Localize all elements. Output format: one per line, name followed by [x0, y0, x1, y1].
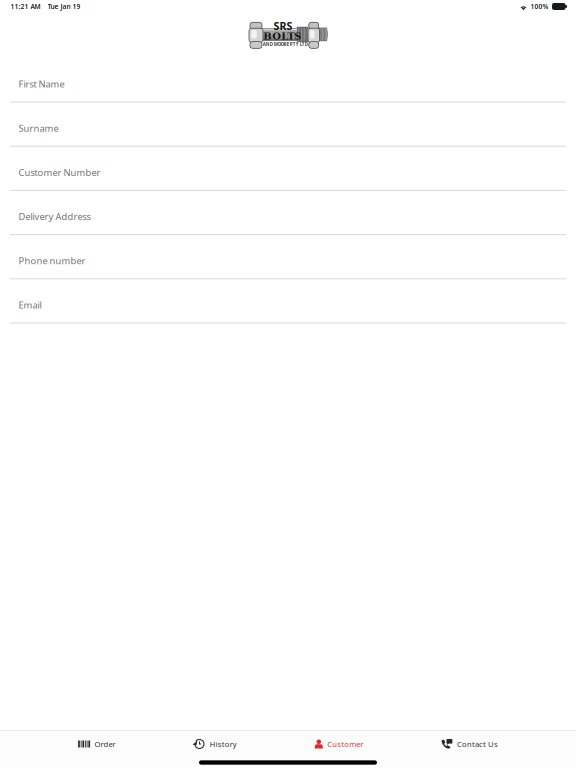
button[interactable]: History	[194, 731, 237, 757]
button[interactable]: Customer Number	[0, 147, 576, 191]
button[interactable]: Order	[78, 731, 116, 757]
staticText: First Name	[18, 77, 64, 90]
button[interactable]: Email	[0, 279, 576, 323]
staticText: History	[210, 739, 237, 749]
staticText: 100%	[530, 2, 548, 11]
staticText: Customer Number	[18, 166, 100, 179]
staticText: Tue Jan 19	[47, 2, 80, 11]
staticText: 11:21 AM	[10, 2, 40, 11]
button[interactable]: Phone number	[0, 235, 576, 279]
staticText: Phone number	[18, 254, 85, 267]
button[interactable]: First Name	[0, 58, 576, 102]
staticText: Delivery Address	[18, 210, 90, 223]
button[interactable]: Contact Us	[441, 731, 498, 757]
staticText: Surname	[18, 122, 58, 134]
staticText: Order	[95, 739, 116, 749]
staticText: SRS	[273, 19, 292, 33]
button[interactable]: Customer	[315, 731, 363, 757]
staticText: Customer	[327, 739, 363, 749]
button[interactable]: Surname	[0, 102, 576, 147]
staticText: Email	[18, 298, 41, 311]
staticText: AND MOORE PTY LTD	[263, 41, 308, 47]
staticText: Contact Us	[457, 739, 498, 749]
staticText: BOLTS	[263, 30, 301, 42]
button[interactable]: Delivery Address	[0, 191, 576, 235]
